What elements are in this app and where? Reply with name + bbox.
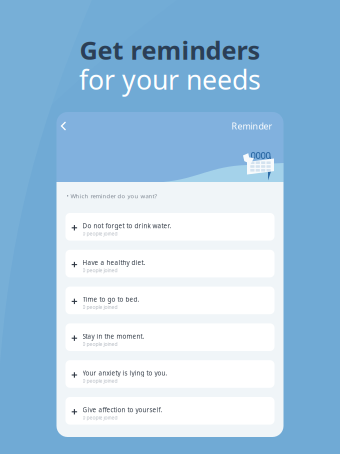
button[interactable]: Back — [56, 117, 70, 135]
button[interactable]: Time to go to bed. — [65, 287, 274, 314]
staticText: 0 people joined — [83, 267, 118, 274]
staticText: 0 people joined — [83, 414, 118, 421]
staticText: Have a healthy diet. — [83, 258, 146, 267]
button[interactable]: Give affection to yourself. — [65, 397, 274, 425]
staticText: Get reminders — [79, 33, 260, 67]
staticText: 0 people joined — [83, 230, 118, 237]
staticText: Time to go to bed. — [83, 295, 140, 304]
staticText: Give affection to yourself. — [83, 406, 163, 414]
staticText: Your anxiety is lying to you. — [83, 369, 168, 377]
staticText: Do not forget to drink water. — [83, 222, 172, 230]
staticText: • Which reminder do you want? — [66, 192, 157, 200]
staticText: Reminder — [231, 120, 272, 132]
staticText: 0 people joined — [83, 340, 118, 347]
staticText: Stay in the moment. — [83, 332, 145, 340]
button[interactable]: Stay in the moment. — [65, 323, 274, 351]
button[interactable]: Your anxiety is lying to you. — [65, 360, 274, 388]
staticText: 0 people joined — [83, 377, 118, 384]
button[interactable]: Have a healthy diet. — [65, 250, 274, 277]
button[interactable]: Do not forget to drink water. — [65, 213, 274, 241]
staticText: for your needs — [79, 62, 261, 97]
staticText: 0 people joined — [83, 304, 118, 311]
